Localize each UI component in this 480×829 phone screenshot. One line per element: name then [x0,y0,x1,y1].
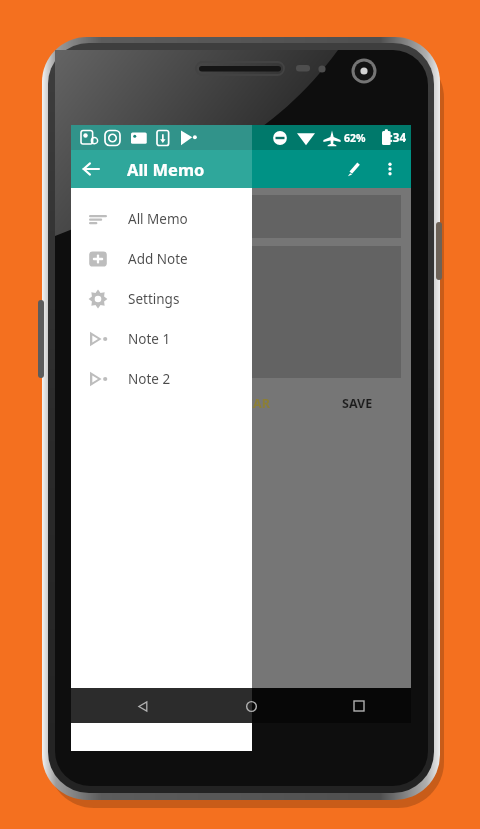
staticText: SAVE [342,395,373,412]
button[interactable]: All Memo [71,199,252,239]
staticText: Settings [128,290,180,308]
button[interactable]: Add Note [71,239,252,279]
button[interactable]: More options [373,152,407,186]
button[interactable]: CLEAR [231,395,270,412]
button[interactable]: Edit [333,150,373,188]
button[interactable]: Back [71,150,111,188]
staticText: Note 2 [128,370,171,388]
button[interactable]: Recent apps [343,690,375,722]
staticText: All Memo [128,210,188,228]
staticText: 62% [344,131,366,145]
button[interactable]: Note 1 [71,319,252,359]
staticText: Add Note [128,250,188,268]
button[interactable]: Home [235,690,267,722]
staticText: Note 1 [128,330,171,348]
staticText: All Memo [127,158,205,180]
button[interactable]: Note 2 [71,359,252,399]
button[interactable]: SAVE [342,395,373,412]
staticText: CLEAR [231,395,270,412]
button[interactable]: Back [127,690,159,722]
staticText: 6:34 [383,130,406,146]
button[interactable]: Settings [71,279,252,319]
